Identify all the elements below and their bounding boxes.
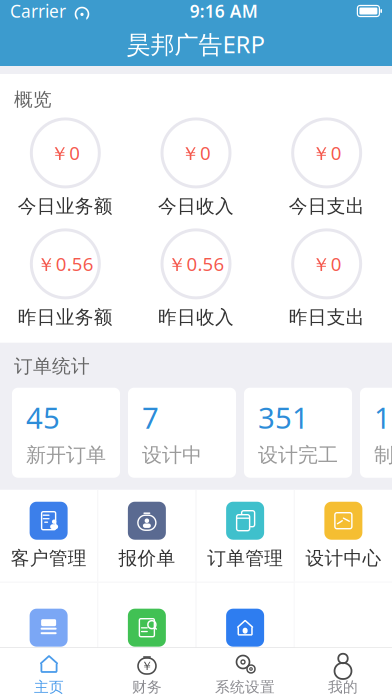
button[interactable]: 主页 — [0, 648, 98, 696]
staticText: ￥0 — [312, 140, 342, 165]
staticText: 13 — [374, 398, 392, 437]
staticText: 45 — [26, 398, 60, 437]
staticText: 概览 — [14, 88, 52, 111]
staticText: 351 — [258, 398, 309, 437]
staticText: 系统设置 — [215, 678, 275, 696]
button[interactable]: 我的 — [294, 648, 392, 696]
button[interactable] — [196, 597, 294, 659]
button[interactable]: ￥0.56 — [131, 230, 261, 329]
button[interactable]: ￥0 — [261, 119, 392, 218]
staticText: ￥ — [141, 659, 153, 673]
staticText: 9:16 AM — [190, 0, 258, 22]
staticText: 昨日业务额 — [18, 306, 113, 329]
button[interactable]: 45 — [12, 388, 120, 478]
staticText: 今日支出 — [289, 195, 365, 218]
button[interactable] — [0, 597, 97, 659]
staticText: 设计中 — [142, 443, 202, 467]
button[interactable]: 客户管理 — [0, 490, 97, 582]
staticText: 今日业务额 — [18, 195, 113, 218]
staticText: 报价单 — [118, 547, 175, 570]
staticText: 昨日支出 — [289, 306, 365, 329]
staticText: 客户管理 — [11, 547, 87, 570]
button[interactable]: 7 — [128, 388, 236, 478]
button[interactable]: 设计中心 — [295, 490, 392, 582]
staticText: 财务 — [132, 678, 162, 696]
staticText: 昊邦广告ERP — [126, 28, 265, 60]
button[interactable]: 13 — [360, 388, 392, 478]
button[interactable]: 订单管理 — [196, 490, 294, 582]
staticText: 设计中心 — [305, 547, 381, 570]
staticText: Carrier — [10, 0, 66, 22]
button[interactable]: 351 — [244, 388, 352, 478]
staticText: ￥0.56 — [167, 251, 224, 276]
staticText: ￥0 — [312, 251, 342, 276]
staticText: ￥0.56 — [37, 251, 94, 276]
button[interactable]: ￥0.56 — [0, 230, 131, 329]
staticText: 制作中 — [374, 443, 392, 467]
staticText: 7 — [142, 398, 159, 437]
button[interactable]: ￥0 — [261, 230, 392, 329]
button[interactable] — [98, 597, 195, 659]
staticText: 订单管理 — [207, 547, 283, 570]
button[interactable]: 报价单 — [98, 490, 195, 582]
button[interactable]: ￥0 — [0, 119, 131, 218]
staticText: 设计完工 — [258, 443, 338, 467]
staticText: 新开订单 — [26, 443, 106, 467]
staticText: 今日收入 — [158, 195, 234, 218]
staticText: 主页 — [34, 678, 64, 696]
staticText: ￥0 — [50, 140, 80, 165]
staticText: 昨日收入 — [158, 306, 234, 329]
button[interactable]: ￥0 — [131, 119, 261, 218]
staticText: 我的 — [328, 678, 358, 696]
staticText: 订单统计 — [14, 355, 90, 378]
button[interactable]: ￥ — [98, 648, 196, 696]
staticText: ￥0 — [181, 140, 211, 165]
button[interactable]: 系统设置 — [196, 648, 294, 696]
